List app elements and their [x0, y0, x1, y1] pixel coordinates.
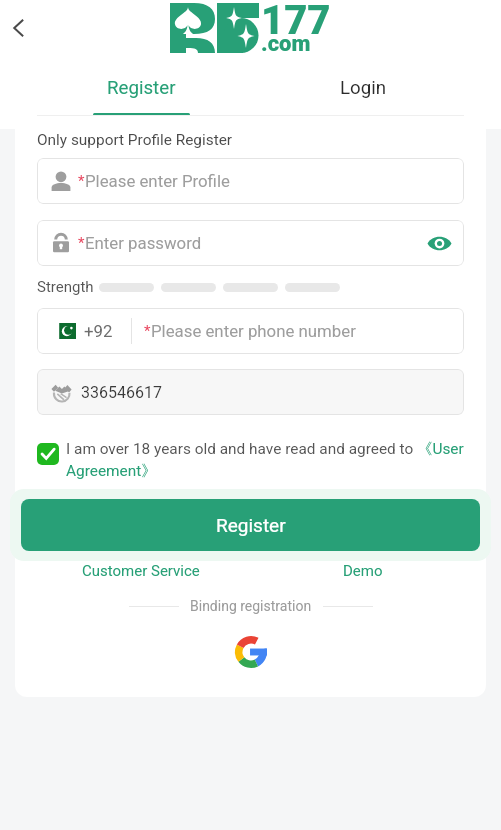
staticText: 177 [261, 0, 331, 44]
staticText: Only support Profile Register [37, 131, 233, 149]
staticText: * [78, 172, 85, 190]
staticText: I am over 18 years old and have read and… [66, 439, 464, 481]
button[interactable]: Register [21, 499, 480, 551]
button[interactable]: Demo [330, 562, 396, 580]
button[interactable]: Login [315, 77, 412, 116]
button[interactable]: Sign in with Google [229, 630, 273, 674]
staticText: Register [216, 514, 286, 536]
staticText: Enter password [85, 233, 202, 253]
staticText: Please enter phone number [151, 321, 356, 341]
button[interactable]: +92 [37, 308, 464, 354]
staticText: Register [107, 77, 176, 99]
button[interactable]: Agree to terms [37, 443, 59, 465]
button[interactable]: Show password [426, 230, 452, 256]
staticText: Binding registration [190, 598, 312, 614]
staticText: +92 [84, 321, 113, 341]
staticText: 336546617 [81, 383, 162, 402]
staticText: Login [340, 77, 387, 99]
staticText: Demo [343, 562, 383, 580]
staticText: Strength [37, 278, 94, 296]
button[interactable]: * [37, 220, 464, 266]
button[interactable]: 336546617 [37, 369, 464, 415]
button[interactable]: Register [93, 77, 190, 116]
staticText: .com [261, 31, 311, 57]
staticText: * [144, 322, 151, 340]
staticText: * [78, 234, 85, 252]
button[interactable]: Back [2, 12, 34, 44]
button[interactable]: * [37, 158, 464, 204]
button[interactable]: Customer Service [78, 562, 204, 580]
staticText: Customer Service [82, 562, 200, 580]
staticText: Please enter Profile [85, 171, 230, 191]
